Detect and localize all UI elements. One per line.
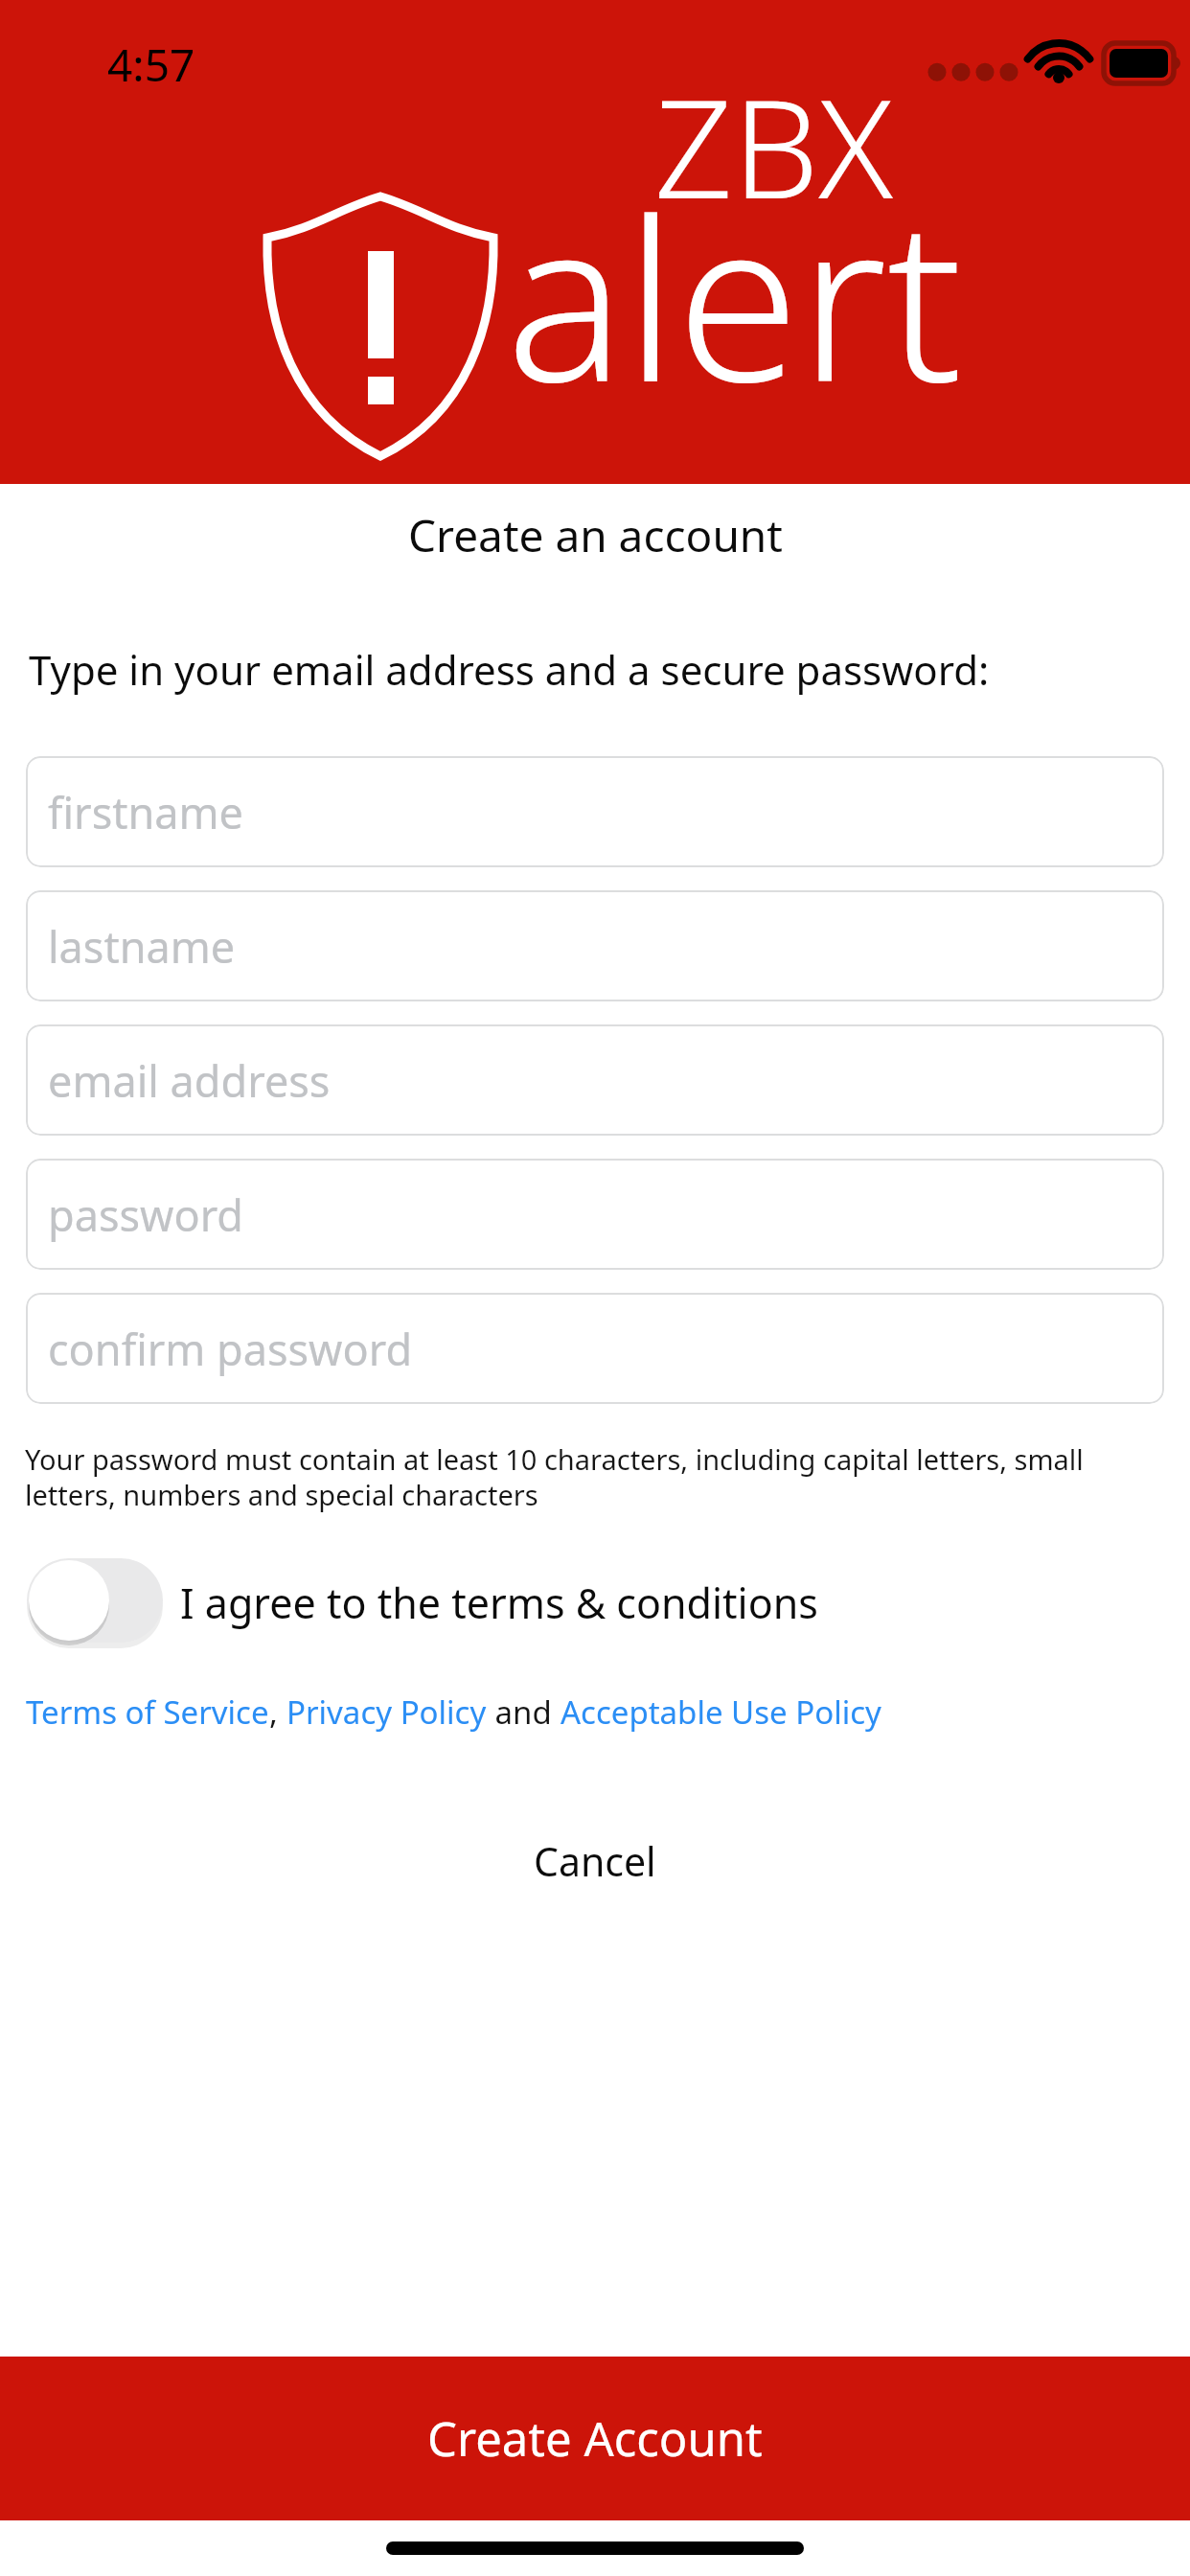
button[interactable]: firstname bbox=[26, 756, 1164, 867]
staticText: ZBX bbox=[654, 53, 893, 238]
button[interactable]: password bbox=[26, 1159, 1164, 1270]
staticText: password bbox=[48, 1185, 243, 1244]
staticText: email address bbox=[48, 1051, 331, 1110]
button[interactable]: Create Account bbox=[0, 2357, 1190, 2520]
staticText: Acceptable Use Policy bbox=[561, 1690, 881, 1734]
button[interactable]: confirm password bbox=[26, 1293, 1164, 1404]
staticText: Create Account bbox=[427, 2406, 763, 2471]
staticText: Cancel bbox=[534, 1834, 656, 1888]
other: I agree to the terms and conditions togg… bbox=[23, 1556, 167, 1648]
staticText: and bbox=[487, 1690, 561, 1734]
staticText: Privacy Policy bbox=[286, 1690, 487, 1734]
button[interactable]: Terms of Service bbox=[26, 1690, 269, 1734]
button[interactable]: Cancel bbox=[0, 1828, 1190, 1895]
button[interactable]: I agree to the terms and conditions togg… bbox=[23, 1556, 818, 1648]
staticText: Create an account bbox=[408, 505, 783, 565]
staticText: , bbox=[269, 1690, 286, 1734]
staticText: Terms of Service bbox=[26, 1690, 269, 1734]
staticText: Your password must contain at least 10 c… bbox=[25, 1440, 1140, 1514]
staticText: Type in your email address and a secure … bbox=[29, 642, 990, 697]
staticText: lastname bbox=[48, 917, 236, 976]
staticText: 4:57 bbox=[107, 34, 195, 95]
button[interactable]: Privacy Policy bbox=[286, 1690, 487, 1734]
staticText: I agree to the terms & conditions bbox=[180, 1575, 818, 1631]
button[interactable]: lastname bbox=[26, 890, 1164, 1001]
staticText: confirm password bbox=[48, 1320, 413, 1378]
staticText: firstname bbox=[48, 783, 243, 841]
staticText: alert bbox=[506, 144, 963, 447]
button[interactable]: Acceptable Use Policy bbox=[561, 1690, 881, 1734]
button[interactable]: email address bbox=[26, 1024, 1164, 1136]
